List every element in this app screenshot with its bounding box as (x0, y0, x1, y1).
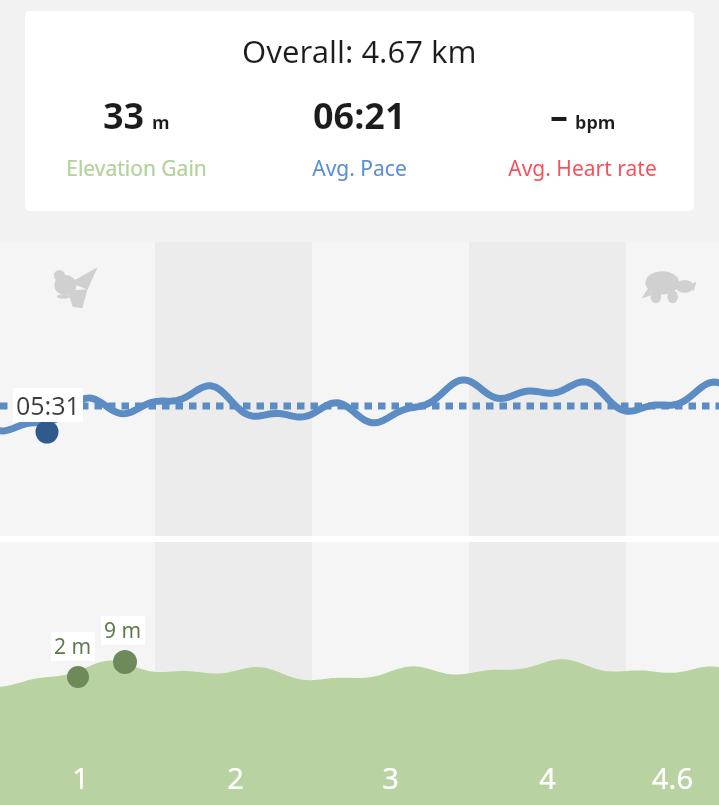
staticText: 3 (382, 758, 399, 797)
staticText: Avg. Pace (312, 154, 407, 183)
staticText: bpm (575, 110, 616, 135)
staticText: 05:31 (16, 388, 80, 422)
button[interactable]: 05:31 (0, 242, 719, 536)
other: Fast pace (52, 264, 100, 310)
other: Slow pace (641, 268, 697, 308)
button[interactable]: – (471, 91, 694, 183)
staticText: 2 m (54, 632, 92, 661)
staticText: 4.6 (652, 758, 693, 797)
staticText: 1 (72, 758, 89, 797)
staticText: 2 (227, 758, 244, 797)
staticText: – (550, 91, 568, 140)
staticText: Avg. Heart rate (508, 154, 657, 183)
button[interactable]: 2 m (0, 542, 719, 805)
staticText: Overall: 4.67 km (242, 30, 477, 72)
button[interactable]: 33 (25, 91, 248, 183)
staticText: 06:21 (313, 91, 406, 140)
staticText: m (152, 110, 170, 135)
staticText: 4 (539, 758, 556, 797)
button[interactable]: 06:21 (248, 91, 471, 183)
staticText: 33 (103, 91, 145, 140)
button[interactable]: Overall: 4.67 km (25, 11, 694, 211)
staticText: Elevation Gain (66, 154, 207, 183)
staticText: 9 m (104, 616, 142, 645)
